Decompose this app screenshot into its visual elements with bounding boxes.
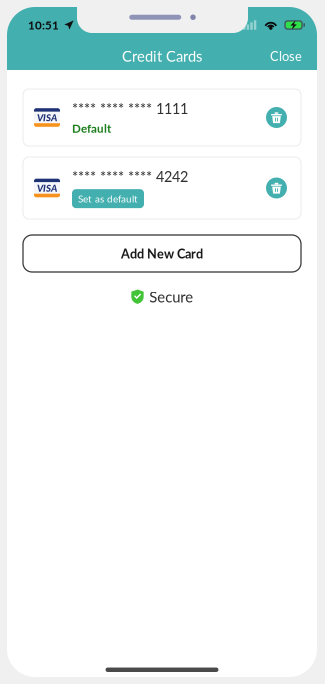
staticText: Add New Card: [121, 246, 203, 261]
staticText: Secure: [149, 288, 193, 306]
staticText: Credit Cards: [122, 47, 202, 65]
staticText: **** **** **** 4242: [72, 168, 188, 185]
button[interactable]: Delete card: [266, 177, 287, 198]
staticText: Close: [270, 48, 302, 64]
button[interactable]: Delete card: [266, 107, 287, 128]
staticText: Default: [72, 121, 111, 135]
staticText: Set as default: [78, 193, 138, 204]
button[interactable]: Set as default: [72, 189, 144, 208]
staticText: 10:51: [28, 18, 59, 32]
button[interactable]: Add New Card: [23, 235, 301, 272]
staticText: **** **** **** 1111: [72, 100, 188, 117]
staticText: VISA: [37, 112, 57, 123]
staticText: VISA: [37, 182, 57, 194]
button[interactable]: Close: [261, 42, 311, 70]
